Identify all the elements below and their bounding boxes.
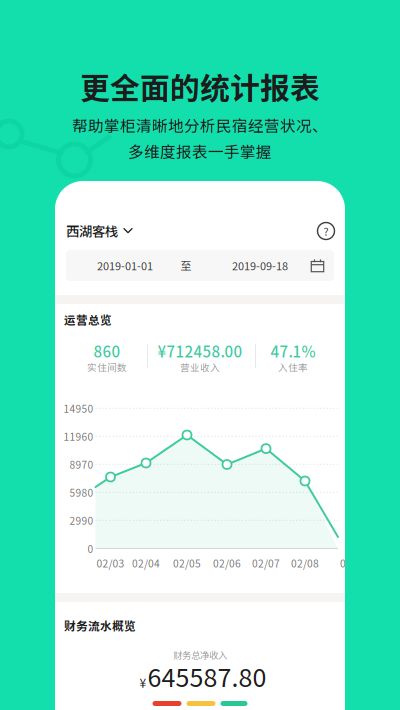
- staticText: 营业收入: [180, 360, 220, 374]
- staticText: 0: [87, 541, 93, 556]
- staticText: 2019-09-18: [232, 258, 288, 273]
- staticText: 帮助掌柜清晰地分析民宿经营状况、: [72, 114, 328, 136]
- staticText: 860: [93, 340, 120, 362]
- staticText: 47.1%: [270, 340, 315, 362]
- staticText: 14950: [63, 401, 93, 416]
- button[interactable]: Help: [316, 221, 336, 241]
- staticText: 0: [340, 556, 346, 570]
- staticText: 多维度报表一手掌握: [128, 140, 272, 162]
- button[interactable]: 2019-01-01: [66, 250, 334, 281]
- staticText: 至: [180, 258, 191, 273]
- staticText: 02/04: [132, 556, 160, 570]
- staticText: 西湖客栈: [66, 221, 118, 240]
- staticText: 入住率: [278, 360, 308, 374]
- staticText: 8970: [69, 457, 93, 472]
- staticText: 11960: [63, 429, 93, 444]
- staticText: 2019-01-01: [97, 258, 153, 273]
- staticText: 运营总览: [64, 311, 112, 328]
- staticText: 02/08: [291, 556, 319, 570]
- staticText: 02/07: [252, 556, 280, 570]
- staticText: 更全面的统计报表: [80, 64, 320, 108]
- staticText: 2990: [69, 513, 93, 528]
- staticText: 财务总净收入: [173, 648, 227, 661]
- staticText: 实住间数: [87, 360, 127, 374]
- button[interactable]: 西湖客栈: [62, 213, 137, 248]
- staticText: 645587.80: [147, 658, 266, 694]
- staticText: 02/03: [96, 556, 124, 570]
- staticText: ?: [323, 223, 328, 239]
- staticText: 02/05: [173, 556, 201, 570]
- staticText: 财务流水概览: [64, 617, 136, 634]
- staticText: ¥: [139, 674, 146, 691]
- staticText: ¥712458.00: [157, 340, 242, 362]
- staticText: 5980: [69, 485, 93, 500]
- staticText: 02/06: [213, 556, 241, 570]
